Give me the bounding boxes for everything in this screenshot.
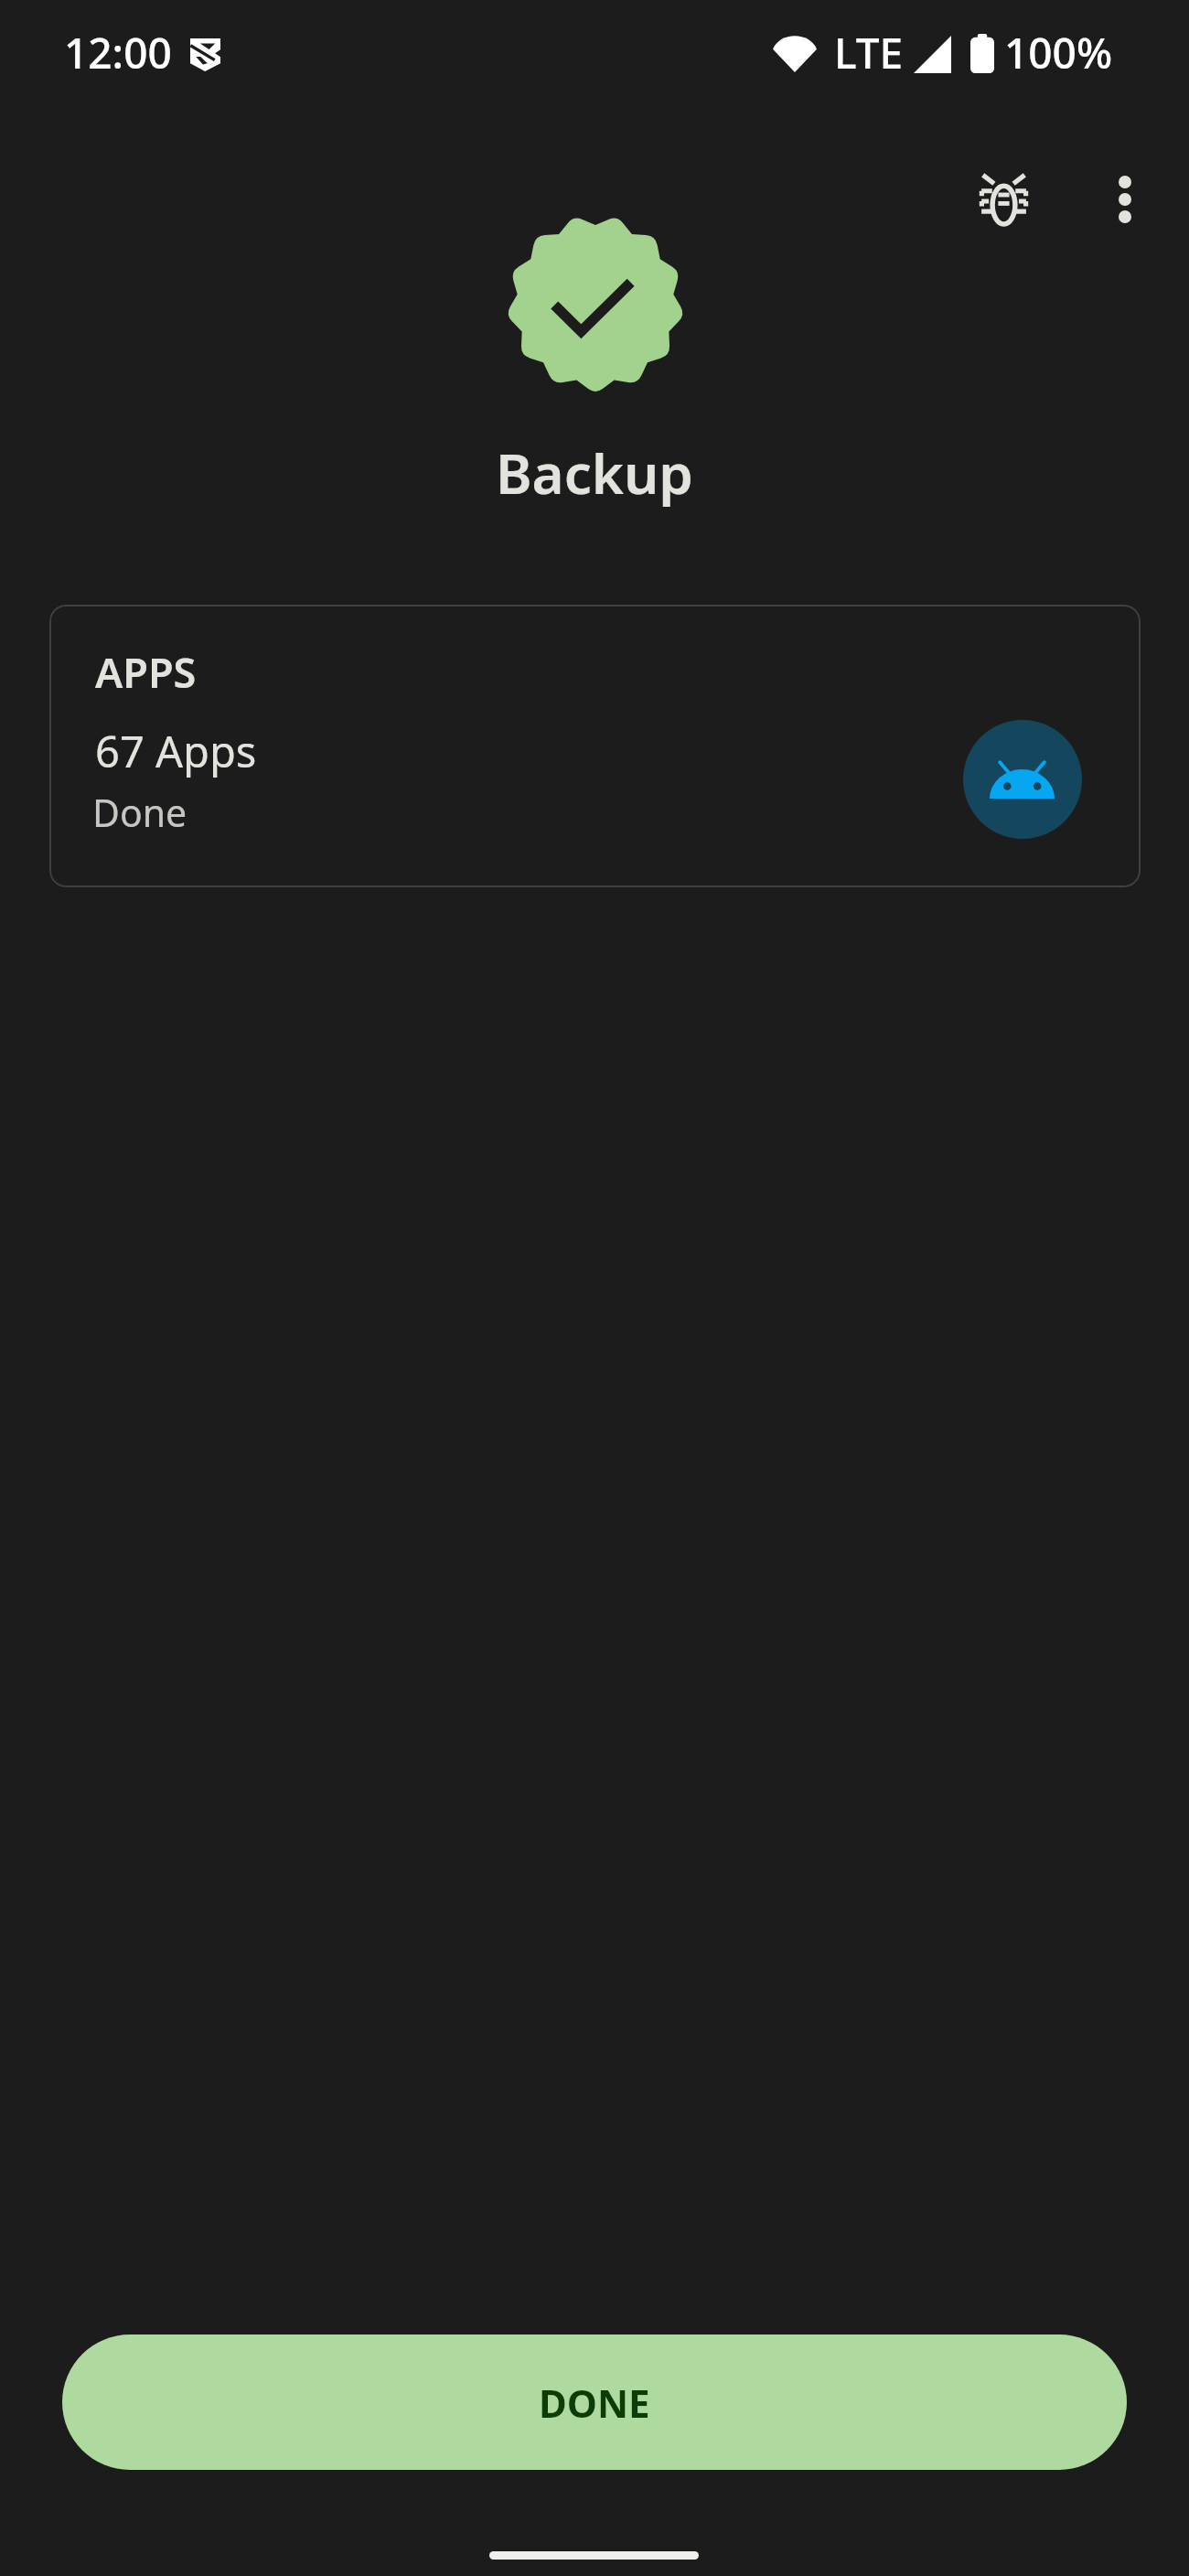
staticText: Done <box>92 787 187 838</box>
button[interactable]: Report a bug <box>954 150 1053 249</box>
staticText: 67 Apps <box>95 722 257 780</box>
button[interactable]: DONE <box>62 2334 1127 2470</box>
staticText: APPS <box>95 644 197 700</box>
staticText: Backup <box>496 435 693 510</box>
staticText: 12:00 <box>64 24 172 81</box>
staticText: LTE <box>834 24 904 81</box>
staticText: 100% <box>1004 24 1113 81</box>
staticText: DONE <box>539 2377 650 2429</box>
button[interactable]: APPS <box>49 605 1141 887</box>
button[interactable]: More options <box>1076 150 1174 249</box>
